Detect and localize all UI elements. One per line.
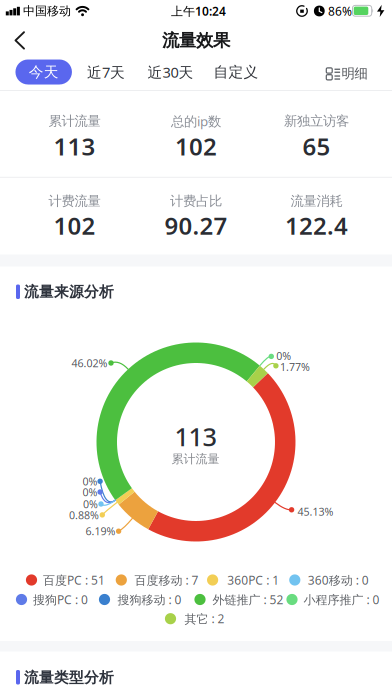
staticText: 新独立访客	[284, 113, 349, 129]
staticText: 113	[53, 130, 95, 162]
staticText: 0%	[82, 485, 97, 499]
staticText: 搜狗PC : 0	[33, 591, 88, 607]
staticText: 1.77%	[280, 360, 310, 374]
staticText: 计费占比	[170, 193, 222, 209]
staticText: 0%	[82, 474, 97, 488]
staticText: 明细	[341, 65, 367, 82]
staticText: 122.4	[285, 209, 348, 241]
staticText: 0.88%	[69, 508, 99, 522]
staticText: 102	[53, 209, 95, 241]
staticText: 90.27	[164, 209, 227, 241]
staticText: 百度PC : 51	[43, 572, 105, 588]
staticText: 流量类型分析	[24, 668, 114, 686]
staticText: 中国移动	[23, 4, 71, 18]
staticText: 自定义	[213, 63, 258, 81]
staticText: 45.13%	[297, 504, 333, 519]
button[interactable]: 近7天	[76, 59, 136, 84]
button[interactable]: 今天	[15, 59, 72, 84]
staticText: 流量效果	[162, 30, 230, 51]
staticText: 总的ip数	[171, 112, 221, 130]
staticText: 外链推广 : 52	[212, 591, 283, 607]
staticText: 其它 : 2	[184, 611, 224, 627]
staticText: 65	[302, 130, 330, 162]
staticText: 近30天	[147, 62, 193, 82]
staticText: 360移动 : 0	[308, 572, 369, 588]
button[interactable]: 近30天	[136, 59, 204, 84]
staticText: 360PC : 1	[227, 572, 279, 588]
staticText: 流量来源分析	[24, 283, 114, 301]
staticText: 累计流量	[48, 113, 100, 129]
button[interactable]: 明细	[322, 65, 367, 82]
staticText: 102	[175, 130, 217, 162]
staticText: 近7天	[87, 62, 125, 82]
button[interactable]: Back	[2, 22, 42, 58]
button[interactable]: 自定义	[204, 59, 268, 84]
staticText: 小程序推广 : 0	[303, 591, 379, 607]
staticText: 流量消耗	[290, 193, 342, 209]
staticText: 今天	[29, 63, 59, 81]
staticText: 0%	[276, 349, 291, 363]
staticText: 累计流量	[171, 452, 219, 466]
staticText: 0%	[83, 497, 98, 511]
staticText: 6.19%	[85, 524, 115, 538]
staticText: 百度移动 : 7	[134, 572, 198, 588]
staticText: 86%	[328, 3, 352, 19]
staticText: 46.02%	[71, 356, 107, 370]
staticText: 113	[174, 420, 216, 453]
staticText: 上午10:24	[171, 3, 226, 19]
staticText: 计费流量	[48, 193, 100, 209]
staticText: 搜狗移动 : 0	[117, 591, 181, 607]
